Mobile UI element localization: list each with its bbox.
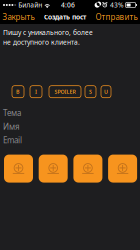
button[interactable]: Добавить вложение	[108, 155, 137, 183]
staticText: Пишу с уникального, более	[3, 28, 93, 37]
staticText: I	[35, 88, 37, 95]
button[interactable]: SPOILER	[49, 86, 81, 98]
button[interactable]: Добавить вложение	[39, 155, 68, 183]
staticText: Закрыть	[2, 12, 34, 22]
button[interactable]: B	[12, 86, 24, 98]
button[interactable]: U	[101, 86, 111, 98]
staticText: не доступного клиента.	[3, 38, 80, 47]
button[interactable]: Закрыть	[0, 10, 37, 24]
staticText: Email	[3, 135, 22, 146]
staticText: SPOILER	[54, 88, 75, 95]
staticText: U	[104, 88, 108, 95]
staticText: B	[16, 88, 20, 95]
button[interactable]: Отправить	[93, 10, 140, 24]
staticText: Тема	[3, 108, 21, 118]
staticText: 4:06	[61, 1, 75, 9]
staticText: 43%	[110, 1, 124, 9]
staticText: Отправить	[95, 12, 137, 22]
button[interactable]: I	[30, 86, 42, 98]
button[interactable]: Добавить вложение	[4, 155, 33, 183]
staticText: Имя	[3, 121, 20, 132]
staticText: Билайн	[16, 1, 42, 9]
staticText: Создать пост	[44, 13, 86, 21]
button[interactable]: S	[85, 86, 96, 98]
button[interactable]: Добавить вложение	[73, 155, 102, 183]
staticText: S	[89, 88, 92, 95]
